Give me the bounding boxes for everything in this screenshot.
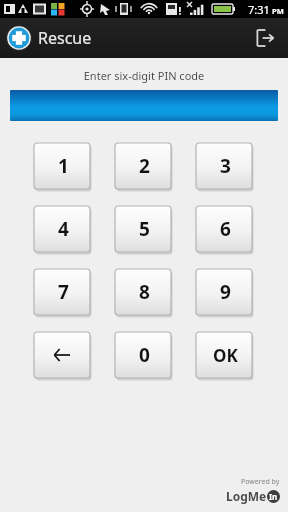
button[interactable]: 3 xyxy=(196,143,254,191)
staticText: Enter six-digit PIN code xyxy=(0,68,288,83)
staticText: 7:31 xyxy=(248,2,270,17)
button[interactable]: OK xyxy=(196,332,254,380)
staticText: 8 xyxy=(139,279,150,305)
staticText: PM xyxy=(272,6,284,16)
button[interactable]: 9 xyxy=(196,269,254,317)
staticText: 0 xyxy=(139,342,150,368)
button[interactable]: Log out xyxy=(242,18,288,58)
button[interactable] xyxy=(10,90,278,121)
staticText: In xyxy=(269,491,278,502)
button[interactable] xyxy=(34,332,92,380)
staticText: 1 xyxy=(58,153,69,179)
button[interactable]: 7 xyxy=(34,269,92,317)
staticText: Rescue xyxy=(38,27,92,49)
button[interactable]: 2 xyxy=(115,143,173,191)
staticText: OK xyxy=(213,344,238,367)
staticText: 6 xyxy=(220,216,231,242)
button[interactable]: 0 xyxy=(115,332,173,380)
staticText: 5 xyxy=(139,216,150,242)
button[interactable]: 8 xyxy=(115,269,173,317)
staticText: 9 xyxy=(220,279,231,305)
button[interactable]: 1 xyxy=(34,143,92,191)
staticText: 4 xyxy=(58,216,69,242)
button[interactable]: 6 xyxy=(196,206,254,254)
staticText: LogMe xyxy=(226,488,267,504)
staticText: Powered by xyxy=(241,477,280,487)
staticText: 7 xyxy=(58,279,69,305)
staticText: 2 xyxy=(139,153,150,179)
staticText: 3 xyxy=(220,153,231,179)
button[interactable]: 4 xyxy=(34,206,92,254)
button[interactable]: 5 xyxy=(115,206,173,254)
